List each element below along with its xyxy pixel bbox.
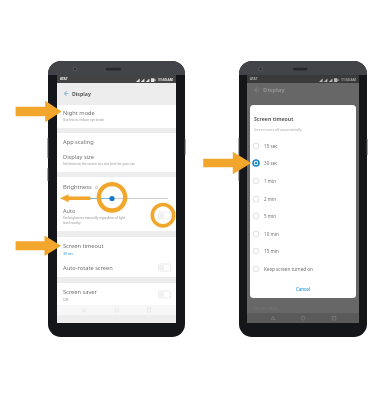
staticText: Auto-rotate screen: [63, 264, 113, 272]
button[interactable]: Home: [112, 305, 122, 315]
staticText: Screen timeout: [254, 115, 294, 122]
staticText: Use this to reduce eye strain: [63, 118, 105, 122]
button[interactable]: Toggle: [158, 290, 171, 299]
staticText: Display: [263, 86, 285, 94]
button[interactable]: 2 min: [250, 190, 356, 208]
button[interactable]: Screen saver: [57, 283, 176, 305]
staticText: Night mode: [63, 109, 95, 117]
staticText: AT&T: [250, 77, 258, 81]
staticText: App scaling: [63, 138, 94, 146]
button[interactable]: 5 min: [250, 207, 356, 225]
staticText: Off: [63, 297, 69, 302]
button[interactable]: 1 min: [250, 172, 356, 190]
staticText: Keep screen turned on: [264, 266, 313, 272]
button[interactable]: 10 min: [250, 225, 356, 243]
button[interactable]: Cancel: [287, 283, 319, 295]
button[interactable]: [57, 195, 176, 202]
staticText: Auto: [63, 207, 76, 215]
button[interactable]: 30 sec: [250, 154, 356, 172]
staticText: 2 min: [264, 196, 277, 202]
staticText: 10 min: [264, 231, 279, 237]
staticText: 1 min: [264, 178, 277, 184]
staticText: 11:50 AM: [341, 77, 356, 82]
staticText: Screen turns off automatically: [254, 127, 302, 132]
button[interactable]: Screen timeout: [57, 237, 176, 258]
staticText: 30 sec: [264, 160, 278, 166]
staticText: Brightness: [63, 183, 92, 191]
button[interactable]: Back: [79, 305, 89, 315]
button[interactable]: App scaling: [57, 133, 176, 150]
button[interactable]: Display size: [57, 150, 176, 172]
staticText: Screen timeout: [63, 242, 104, 250]
button[interactable]: Back: [268, 313, 278, 323]
staticText: 30 sec: [63, 251, 74, 256]
staticText: Cancel: [296, 286, 310, 292]
button[interactable]: Night mode: [57, 105, 176, 128]
button[interactable]: Recents: [144, 305, 154, 315]
staticText: AT&T: [60, 77, 68, 81]
button[interactable]: Back: [61, 89, 70, 98]
staticText: 15 sec: [264, 143, 278, 149]
button[interactable]: Toggle: [158, 263, 171, 272]
staticText: Display size: [63, 153, 94, 161]
button[interactable]: Home: [298, 313, 308, 323]
staticText: 5 min: [264, 213, 277, 219]
button[interactable]: 15 sec: [250, 137, 356, 155]
button[interactable]: Keep screen turned on: [250, 260, 356, 278]
button[interactable]: 15 min: [250, 242, 356, 260]
button[interactable]: Toggle: [158, 211, 171, 220]
staticText: Set items on the screen to a size best f…: [63, 162, 136, 166]
staticText: Set brightness manually regardless of li…: [63, 216, 129, 225]
staticText: Display: [72, 90, 91, 97]
button[interactable]: Recents: [329, 313, 339, 323]
staticText: 15 min: [264, 248, 279, 254]
button[interactable]: Auto: [57, 207, 176, 231]
button[interactable]: Auto-rotate screen: [57, 258, 176, 277]
staticText: Screen saver: [63, 288, 97, 296]
staticText: 11:50 AM: [158, 77, 173, 82]
